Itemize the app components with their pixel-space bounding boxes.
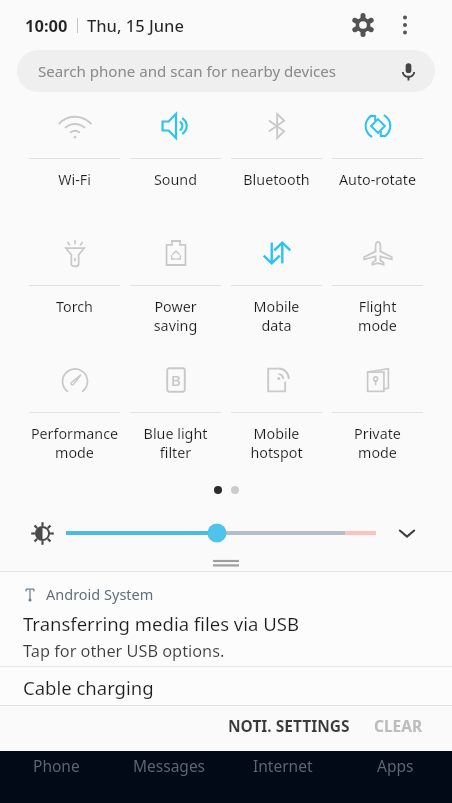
staticText: Phone — [33, 755, 80, 776]
staticText: Messages — [133, 755, 206, 776]
staticText: Auto-rotate — [327, 170, 428, 189]
staticText: Android System — [46, 584, 154, 604]
button[interactable]: Performance mode — [24, 351, 125, 478]
staticText: Power saving — [125, 297, 226, 335]
button[interactable]: NOTI. SETTINGS — [214, 706, 364, 745]
button[interactable]: Bluetooth — [226, 97, 327, 224]
button[interactable]: Auto-rotate — [327, 97, 428, 224]
button[interactable]: Expand brightness settings — [394, 520, 420, 546]
button[interactable]: Private mode — [327, 351, 428, 478]
staticText: Sound — [125, 170, 226, 189]
button[interactable]: Sound — [125, 97, 226, 224]
staticText: Search phone and scan for nearby devices — [38, 61, 337, 82]
staticText: NOTI. SETTINGS — [228, 715, 350, 736]
staticText: Apps — [377, 755, 414, 776]
button[interactable]: Internet — [226, 751, 339, 803]
button[interactable]: Search — [17, 50, 435, 92]
button[interactable]: B — [125, 351, 226, 478]
button[interactable]: Android System — [0, 572, 452, 666]
button[interactable]: Wi-Fi — [24, 97, 125, 224]
staticText: Performance mode — [24, 424, 125, 462]
staticText: Blue light filter — [125, 424, 226, 462]
button[interactable]: Power saving — [125, 224, 226, 351]
staticText: Private mode — [327, 424, 428, 462]
staticText: 10:00 — [25, 14, 68, 36]
staticText: Cable charging — [23, 675, 154, 700]
staticText: B — [171, 370, 181, 390]
staticText: Mobile data — [226, 297, 327, 335]
staticText: Wi-Fi — [24, 170, 125, 189]
staticText: Tap for other USB options. — [23, 640, 225, 662]
staticText: Flight mode — [327, 297, 428, 335]
staticText: Torch — [24, 297, 125, 316]
staticText: Bluetooth — [226, 170, 327, 189]
button[interactable]: Torch — [24, 224, 125, 351]
button[interactable]: CLEAR — [364, 706, 452, 745]
button[interactable]: Phone — [0, 751, 113, 803]
button[interactable]: Cable charging — [0, 667, 452, 705]
button[interactable]: More options — [386, 6, 424, 44]
staticText: Thu, 15 June — [87, 14, 184, 36]
button[interactable]: Apps — [339, 751, 452, 803]
staticText: Mobile hotspot — [226, 424, 327, 462]
button[interactable]: Flight mode — [327, 224, 428, 351]
staticText: Transferring media files via USB — [23, 611, 299, 636]
button[interactable]: Quick settings — [342, 4, 384, 46]
button[interactable]: Mobile data — [226, 224, 327, 351]
button[interactable]: Mobile hotspot — [226, 351, 327, 478]
button[interactable]: Messages — [113, 751, 226, 803]
staticText: CLEAR — [374, 715, 423, 736]
staticText: Internet — [253, 755, 313, 776]
